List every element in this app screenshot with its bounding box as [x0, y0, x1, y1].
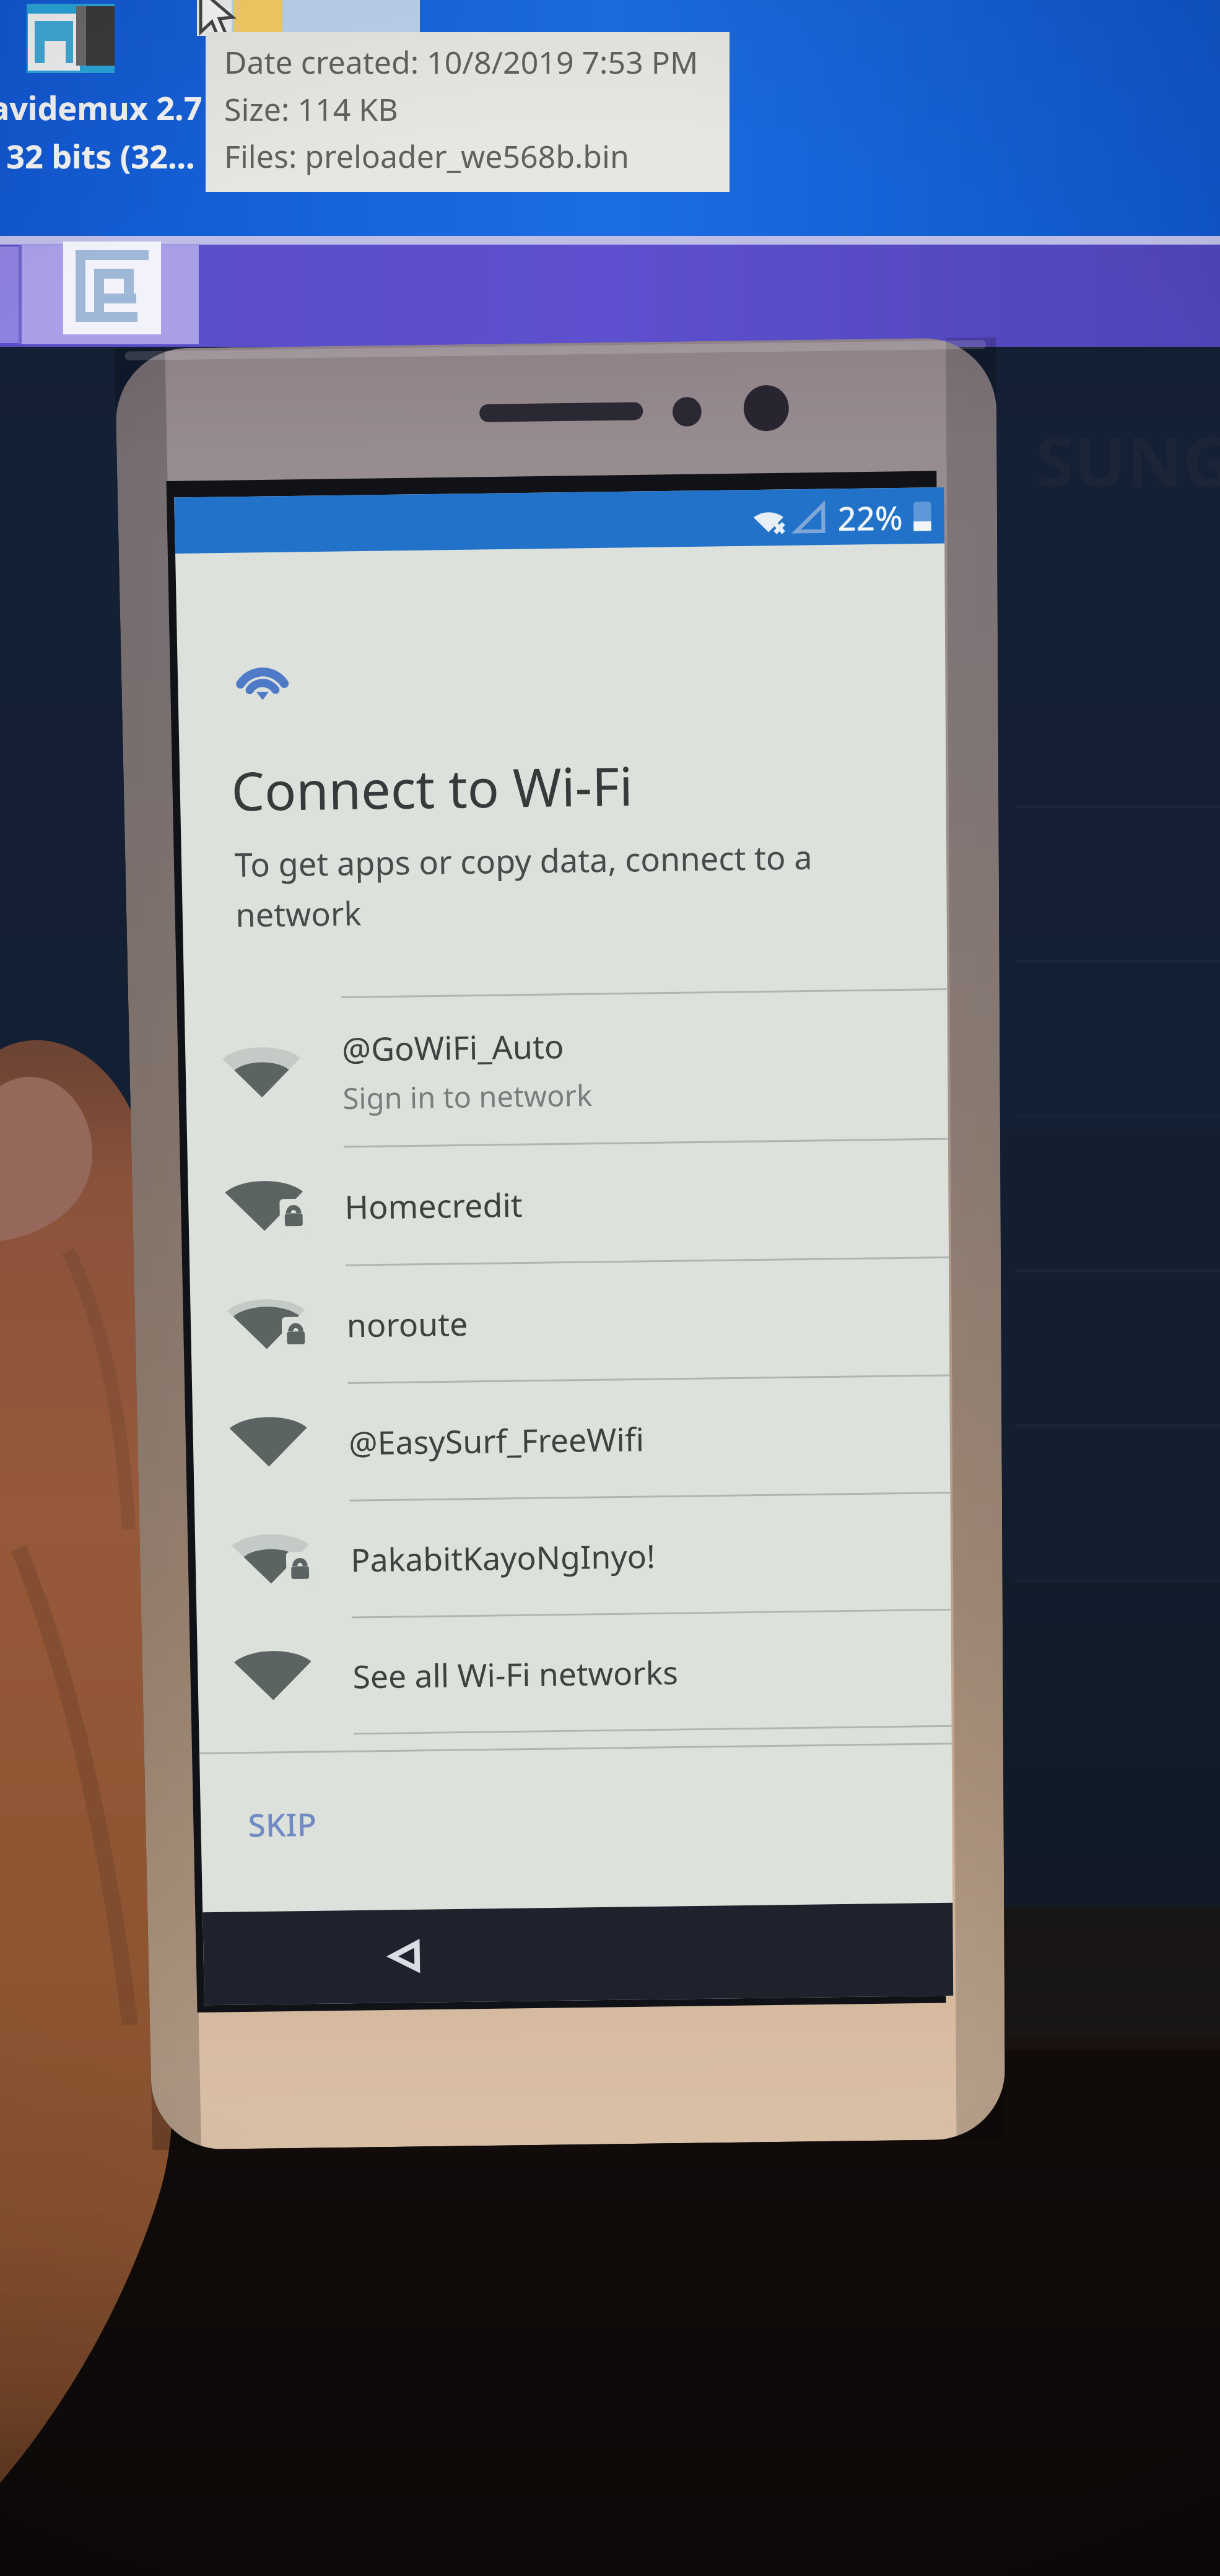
- staticText: - 32 bits (32...: [0, 134, 195, 178]
- button[interactable]: See all Wi-Fi networks: [197, 1609, 952, 1735]
- staticText: @EasySurf_FreeWifi: [348, 1416, 645, 1464]
- button[interactable]: Back: [378, 1929, 433, 1983]
- staticText: Homecredit: [344, 1182, 523, 1228]
- staticText: Files: preloader_we568b.bin: [224, 135, 629, 177]
- button[interactable]: @EasySurf_FreeWifi: [192, 1374, 950, 1502]
- staticText: Size: 114 KB: [224, 88, 398, 130]
- button[interactable]: @GoWiFi_Auto: [184, 988, 948, 1148]
- staticText: 22%: [837, 494, 903, 540]
- staticText: Date created: 10/8/2019 7:53 PM: [224, 41, 699, 83]
- staticText: See all Wi-Fi networks: [352, 1650, 679, 1698]
- staticText: @GoWiFi_Auto: [342, 1023, 564, 1071]
- staticText: SKIP: [248, 1802, 317, 1846]
- staticText: Sign in to network: [342, 1075, 593, 1118]
- staticText: noroute: [346, 1301, 468, 1346]
- button[interactable]: noroute: [190, 1256, 949, 1384]
- button[interactable]: Homecredit: [187, 1138, 949, 1266]
- button[interactable]: PakabitKayoNgInyo!: [194, 1492, 951, 1618]
- staticText: PakabitKayoNgInyo!: [350, 1534, 656, 1581]
- staticText: To get apps or copy data, connect to a n…: [234, 834, 813, 936]
- button[interactable]: SKIP: [224, 1786, 341, 1862]
- staticText: avidemux 2.7: [0, 85, 203, 129]
- staticText: Connect to Wi-Fi: [231, 749, 633, 826]
